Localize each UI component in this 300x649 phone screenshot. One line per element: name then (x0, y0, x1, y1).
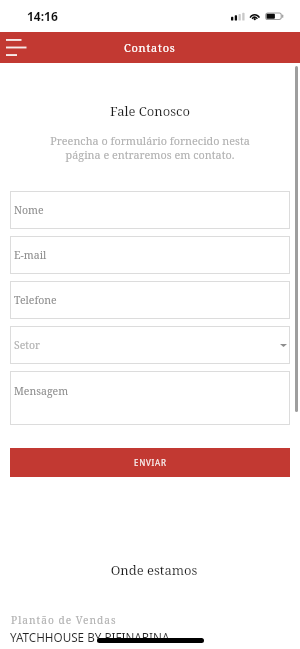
staticText: Contatos (124, 40, 176, 55)
staticText: Setor (14, 338, 41, 352)
button[interactable]: ENVIAR (10, 448, 290, 477)
button[interactable]: Menu (0, 32, 32, 63)
staticText: E-mail (14, 248, 47, 262)
staticText: YATCHHOUSE BY PIFINARINA (10, 629, 170, 645)
staticText: Onde estamos (14, 561, 294, 579)
staticText: Mensagem (14, 384, 69, 398)
other: Expand (280, 344, 287, 347)
staticText: Telefone (14, 293, 57, 307)
staticText: ENVIAR (134, 457, 167, 468)
button[interactable]: Nome (10, 191, 290, 229)
staticText: 14:16 (27, 8, 58, 24)
button[interactable]: Telefone (10, 281, 290, 319)
staticText: Nome (14, 203, 44, 217)
button[interactable]: E-mail (10, 236, 290, 274)
button[interactable]: Mensagem (10, 371, 290, 425)
staticText: Plantão de Vendas (11, 613, 117, 627)
button[interactable]: Setor (10, 326, 290, 364)
staticText: Preencha o formulário fornecido nesta pá… (10, 133, 290, 162)
staticText: Fale Conosco (10, 102, 290, 120)
